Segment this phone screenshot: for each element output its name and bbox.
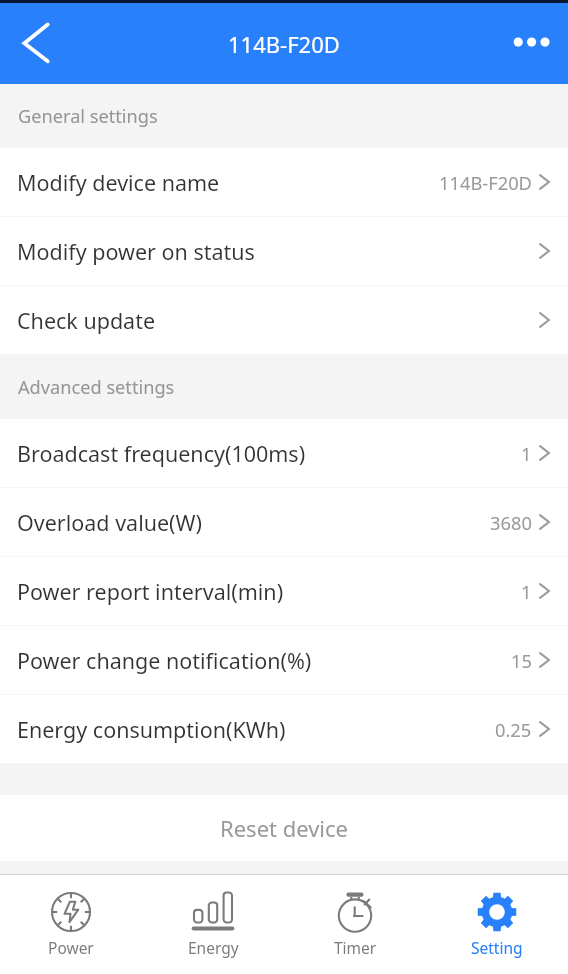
staticText: 1 <box>521 441 532 466</box>
staticText: 15 <box>511 648 532 673</box>
staticText: Overload value(W) <box>17 508 202 537</box>
staticText: Power <box>48 937 94 958</box>
button[interactable]: More options <box>496 3 568 84</box>
button[interactable]: Power <box>0 875 142 974</box>
button[interactable]: Setting <box>426 875 568 974</box>
staticText: Timer <box>334 937 377 958</box>
staticText: 0.25 <box>495 717 532 742</box>
button[interactable]: Modify device name <box>0 148 568 216</box>
staticText: Broadcast frequency(100ms) <box>17 439 306 468</box>
staticText: Modify device name <box>17 168 220 197</box>
staticText: Modify power on status <box>17 237 255 266</box>
staticText: 114B-F20D <box>439 170 532 195</box>
staticText: 3680 <box>490 510 532 535</box>
button[interactable]: Modify power on status <box>0 217 568 285</box>
staticText: 1 <box>521 579 532 604</box>
button[interactable]: Overload value(W) <box>0 488 568 556</box>
staticText: 114B-F20D <box>228 29 340 59</box>
staticText: Energy consumption(KWh) <box>17 715 286 744</box>
button[interactable]: Energy <box>142 875 284 974</box>
staticText: Setting <box>471 937 523 958</box>
staticText: Power report interval(min) <box>17 577 284 606</box>
button[interactable]: Energy consumption(KWh) <box>0 695 568 763</box>
button[interactable]: Broadcast frequency(100ms) <box>0 419 568 487</box>
staticText: Advanced settings <box>18 375 175 400</box>
button[interactable]: Power change notification(%) <box>0 626 568 694</box>
staticText: General settings <box>18 104 158 129</box>
button[interactable]: Timer <box>284 875 426 974</box>
staticText: Reset device <box>220 813 349 843</box>
button[interactable]: Reset device <box>0 795 568 861</box>
button[interactable]: Power report interval(min) <box>0 557 568 625</box>
staticText: Check update <box>17 306 156 335</box>
button[interactable]: Back <box>0 3 72 84</box>
staticText: Power change notification(%) <box>17 646 312 675</box>
staticText: Energy <box>188 937 239 958</box>
button[interactable]: Check update <box>0 286 568 354</box>
